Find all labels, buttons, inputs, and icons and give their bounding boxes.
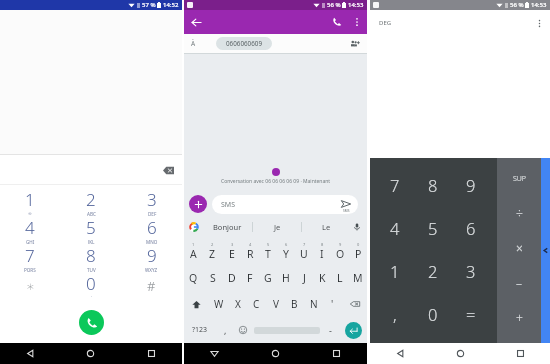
button[interactable]: Back: [188, 14, 204, 30]
button[interactable]: 9: [452, 163, 490, 206]
button[interactable]: SMS: [212, 195, 358, 214]
button[interactable]: 5: [414, 206, 452, 249]
button[interactable]: 0: [60, 269, 121, 297]
button[interactable]: –: [497, 265, 541, 300]
button[interactable]: Send: [339, 317, 367, 343]
button[interactable]: 8: [313, 239, 331, 265]
button[interactable]: Expand panel: [541, 158, 550, 343]
button[interactable]: 6: [452, 206, 490, 249]
button[interactable]: 1: [0, 185, 60, 213]
button[interactable]: J: [295, 265, 313, 291]
button[interactable]: 3: [452, 249, 490, 292]
staticText: Le: [322, 222, 331, 232]
staticText: W: [214, 297, 224, 311]
button[interactable]: G: [259, 265, 277, 291]
button[interactable]: 0606060609: [216, 37, 272, 50]
button[interactable]: +: [497, 300, 541, 335]
staticText: 4: [25, 216, 35, 239]
staticText: SUP: [513, 174, 526, 184]
button[interactable]: F: [241, 265, 259, 291]
button[interactable]: Emoji: [234, 317, 252, 343]
button[interactable]: ,: [216, 317, 234, 343]
button[interactable]: B: [285, 291, 304, 317]
button[interactable]: Back: [370, 343, 430, 364]
staticText: 4: [390, 217, 400, 239]
button[interactable]: M: [349, 265, 367, 291]
button[interactable]: Backspace: [160, 162, 176, 178]
button[interactable]: 7: [0, 241, 60, 269]
button[interactable]: 8: [60, 241, 121, 269]
button[interactable]: 6: [277, 239, 295, 265]
button[interactable]: N: [304, 291, 323, 317]
button[interactable]: Home: [60, 343, 121, 364]
button[interactable]: K: [313, 265, 331, 291]
button[interactable]: ': [323, 291, 342, 317]
button[interactable]: Recents: [306, 343, 367, 364]
staticText: M: [353, 271, 363, 285]
button[interactable]: W: [209, 291, 228, 317]
button[interactable]: 4: [0, 213, 60, 241]
button[interactable]: Home: [430, 343, 490, 364]
button[interactable]: Call: [79, 310, 104, 335]
button[interactable]: Bonjour: [203, 215, 252, 239]
button[interactable]: Back: [184, 343, 245, 364]
button[interactable]: 5: [60, 213, 121, 241]
button[interactable]: 3: [222, 239, 241, 265]
button[interactable]: Je: [253, 215, 301, 239]
button[interactable]: 5: [259, 239, 277, 265]
button[interactable]: 1: [184, 239, 203, 265]
button[interactable]: 2: [203, 239, 222, 265]
button[interactable]: H: [277, 265, 295, 291]
button[interactable]: 2: [60, 185, 121, 213]
button[interactable]: =: [452, 292, 490, 335]
button[interactable]: Q: [184, 265, 203, 291]
button[interactable]: V: [266, 291, 285, 317]
button[interactable]: 0: [414, 292, 452, 335]
staticText: B: [291, 297, 298, 311]
staticText: +: [90, 295, 93, 300]
button[interactable]: -: [321, 317, 339, 343]
button[interactable]: Le: [302, 215, 350, 239]
button[interactable]: 0: [349, 239, 367, 265]
button[interactable]: #: [121, 269, 182, 297]
button[interactable]: 4: [241, 239, 259, 265]
button[interactable]: 4: [376, 206, 414, 249]
button[interactable]: X: [228, 291, 247, 317]
button[interactable]: Add people: [348, 37, 362, 51]
staticText: 57 %: [142, 1, 156, 9]
button[interactable]: More options: [532, 16, 546, 30]
button[interactable]: ÷: [497, 196, 541, 230]
button[interactable]: ,: [376, 292, 414, 335]
button[interactable]: 6: [121, 213, 182, 241]
button[interactable]: Attach: [189, 195, 207, 213]
button[interactable]: ×: [497, 230, 541, 265]
button[interactable]: Shift: [184, 291, 209, 317]
button[interactable]: Call: [329, 14, 345, 30]
button[interactable]: Recents: [490, 343, 550, 364]
button[interactable]: Recents: [121, 343, 182, 364]
button[interactable]: ∗: [0, 269, 60, 297]
button[interactable]: SUP: [497, 162, 541, 196]
button[interactable]: C: [247, 291, 266, 317]
staticText: Z: [209, 247, 216, 261]
button[interactable]: L: [331, 265, 349, 291]
button[interactable]: [252, 317, 321, 343]
button[interactable]: 2: [414, 249, 452, 292]
button[interactable]: Backspace: [342, 291, 367, 317]
button[interactable]: 8: [414, 163, 452, 206]
button[interactable]: S: [203, 265, 222, 291]
button[interactable]: D: [222, 265, 241, 291]
button[interactable]: Voice input: [350, 220, 364, 234]
button[interactable]: Home: [245, 343, 306, 364]
button[interactable]: 9: [331, 239, 349, 265]
staticText: 1: [390, 260, 400, 282]
button[interactable]: 3: [121, 185, 182, 213]
button[interactable]: Back: [0, 343, 60, 364]
button[interactable]: More options: [349, 14, 365, 30]
button[interactable]: 9: [121, 241, 182, 269]
button[interactable]: ?123: [184, 317, 216, 343]
staticText: DEF: [148, 211, 157, 216]
button[interactable]: 7: [376, 163, 414, 206]
button[interactable]: 7: [295, 239, 313, 265]
button[interactable]: 1: [376, 249, 414, 292]
